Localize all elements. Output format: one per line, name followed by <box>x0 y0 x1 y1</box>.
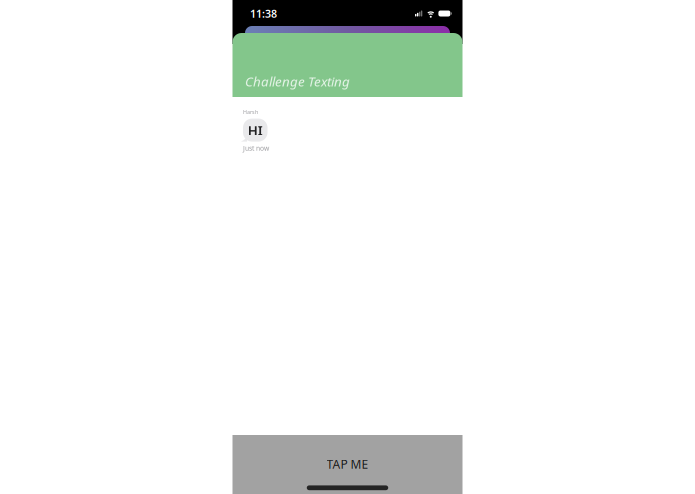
staticText: Challenge Texting <box>245 72 350 90</box>
staticText: Just now <box>243 144 269 153</box>
staticText: Harsh <box>243 108 258 115</box>
button[interactable]: TAP ME <box>232 435 462 494</box>
staticText: HI <box>248 121 263 139</box>
staticText: TAP ME <box>326 456 368 472</box>
staticText: 11:38 <box>250 6 277 21</box>
